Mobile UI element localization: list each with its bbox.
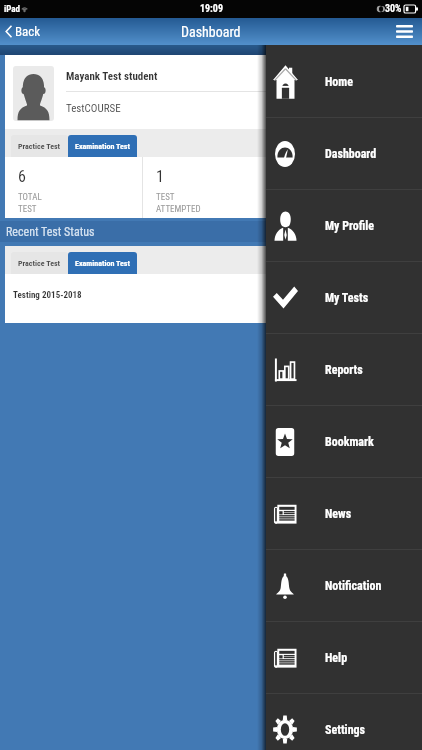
button[interactable]: Help <box>266 622 422 693</box>
button[interactable]: Examination Test <box>68 135 137 157</box>
staticText: Settings <box>325 723 366 737</box>
staticText: Help <box>325 651 348 665</box>
staticText: Recent Test Status <box>6 225 95 239</box>
staticText: Back <box>15 24 41 39</box>
staticText: Dashboard <box>325 147 377 161</box>
staticText: Reports <box>325 363 363 377</box>
staticText: TEST <box>18 204 37 215</box>
button[interactable]: Practice Test <box>11 252 68 274</box>
staticText: Practice Test <box>18 259 61 268</box>
staticText: TOTAL <box>18 192 42 203</box>
staticText: 19:09 <box>200 3 223 15</box>
staticText: TEST <box>156 192 175 203</box>
staticText: Mayank Test student <box>66 70 158 83</box>
staticText: Home <box>325 75 353 89</box>
staticText: My Profile <box>325 219 375 233</box>
staticText: Examination Test <box>75 259 130 268</box>
staticText: Dashboard <box>181 24 241 40</box>
button[interactable]: Back <box>0 24 46 39</box>
staticText: My Tests <box>325 291 369 305</box>
button[interactable]: Practice Test <box>11 135 68 157</box>
staticText: Notification <box>325 579 382 593</box>
staticText: 6 <box>18 167 26 186</box>
button[interactable]: My Profile <box>266 190 422 261</box>
button[interactable]: Bookmark <box>266 406 422 477</box>
staticText: 1 <box>156 167 164 186</box>
staticText: Practice Test <box>18 142 61 151</box>
button[interactable]: Menu <box>387 19 422 44</box>
button[interactable]: News <box>266 478 422 549</box>
button[interactable]: Notification <box>266 550 422 621</box>
staticText: 30% <box>385 3 402 15</box>
staticText: News <box>325 507 352 521</box>
staticText: Examination Test <box>75 142 130 151</box>
button[interactable]: Dashboard <box>266 118 422 189</box>
staticText: Bookmark <box>325 435 374 449</box>
button[interactable]: Settings <box>266 694 422 750</box>
staticText: ATTEMPTED <box>156 204 201 215</box>
button[interactable]: My Tests <box>266 262 422 333</box>
button[interactable]: Home <box>266 46 422 117</box>
staticText: TestCOURSE <box>66 102 121 115</box>
button[interactable]: Reports <box>266 334 422 405</box>
staticText: iPad <box>4 4 21 15</box>
staticText: Testing 2015-2018 <box>13 290 82 301</box>
button[interactable]: Examination Test <box>68 252 137 274</box>
